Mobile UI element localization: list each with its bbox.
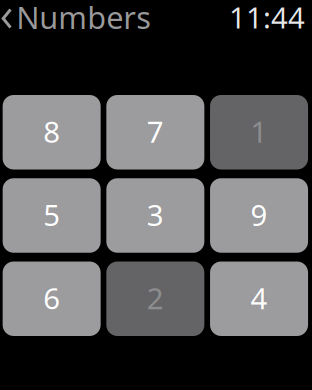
button[interactable]: 5 [3, 178, 101, 253]
button[interactable]: 3 [106, 178, 204, 253]
staticText: 8 [43, 112, 60, 151]
staticText: 7 [147, 112, 164, 151]
staticText: 11:44 [229, 0, 305, 36]
button[interactable]: 9 [210, 178, 308, 253]
button[interactable]: 8 [3, 95, 101, 169]
button[interactable]: 7 [106, 95, 204, 169]
button[interactable]: 4 [210, 261, 308, 336]
staticText: 2 [147, 278, 164, 317]
staticText: 1 [251, 112, 268, 151]
button[interactable]: Numbers [0, 0, 157, 34]
staticText: 6 [43, 278, 60, 317]
staticText: 5 [43, 195, 60, 234]
button[interactable]: 1 [210, 95, 308, 169]
button[interactable]: 2 [106, 261, 204, 336]
staticText: 9 [251, 195, 268, 234]
button[interactable]: 6 [3, 261, 101, 336]
staticText: 4 [251, 278, 268, 317]
staticText: Numbers [16, 0, 151, 37]
staticText: 3 [147, 195, 164, 234]
